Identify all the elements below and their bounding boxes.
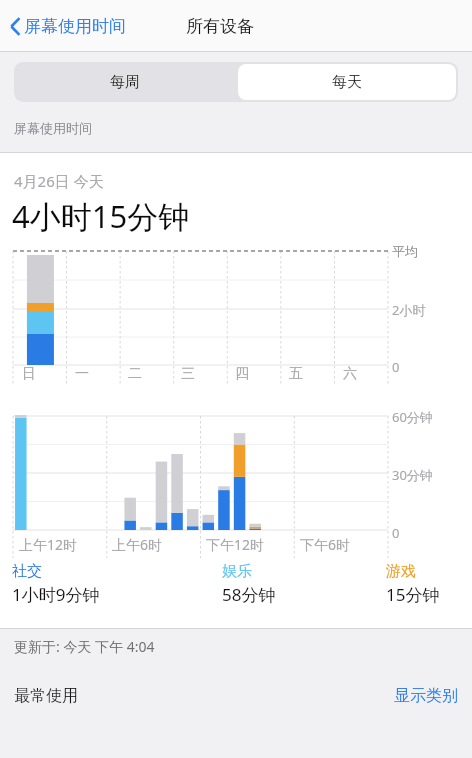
staticText: 平均 bbox=[392, 243, 418, 259]
staticText: 三 bbox=[181, 365, 195, 383]
staticText: 所有设备 bbox=[186, 16, 254, 37]
staticText: 15分钟 bbox=[386, 583, 440, 606]
staticText: 四 bbox=[235, 365, 249, 383]
staticText: 每天 bbox=[332, 73, 362, 92]
staticText: 0 bbox=[392, 524, 400, 542]
staticText: 4小时15分钟 bbox=[12, 195, 190, 237]
button[interactable]: 每天 bbox=[238, 64, 456, 100]
button[interactable]: 社交 bbox=[12, 562, 100, 606]
staticText: 一 bbox=[75, 365, 89, 383]
button[interactable]: 娱乐 bbox=[222, 562, 276, 606]
staticText: 娱乐 bbox=[222, 562, 252, 581]
staticText: 每周 bbox=[110, 73, 140, 92]
staticText: 30分钟 bbox=[392, 466, 433, 484]
staticText: 屏幕使用时间 bbox=[14, 120, 92, 136]
staticText: 游戏 bbox=[386, 562, 416, 581]
staticText: 二 bbox=[128, 365, 142, 383]
staticText: 社交 bbox=[12, 562, 42, 581]
staticText: 1小时9分钟 bbox=[12, 583, 100, 606]
staticText: 2小时 bbox=[392, 301, 426, 319]
staticText: 上午6时 bbox=[112, 535, 163, 554]
staticText: 五 bbox=[289, 365, 303, 383]
staticText: 日 bbox=[22, 365, 36, 383]
staticText: 屏幕使用时间 bbox=[24, 16, 126, 37]
staticText: 最常使用 bbox=[14, 686, 78, 706]
staticText: 58分钟 bbox=[222, 583, 276, 606]
staticText: 0 bbox=[392, 358, 400, 376]
button[interactable]: 每周 bbox=[14, 62, 236, 102]
staticText: 六 bbox=[343, 365, 357, 383]
button[interactable]: 显示类别 bbox=[394, 686, 458, 706]
staticText: 下午6时 bbox=[300, 535, 351, 554]
staticText: 上午12时 bbox=[19, 535, 78, 554]
button[interactable]: 游戏 bbox=[386, 562, 440, 606]
button[interactable]: Back bbox=[8, 12, 128, 41]
staticText: 更新于: 今天 下午 4:04 bbox=[14, 637, 155, 656]
staticText: 4月26日 今天 bbox=[14, 171, 104, 191]
staticText: 下午12时 bbox=[206, 535, 265, 554]
staticText: 显示类别 bbox=[394, 686, 458, 706]
staticText: 60分钟 bbox=[392, 408, 433, 426]
